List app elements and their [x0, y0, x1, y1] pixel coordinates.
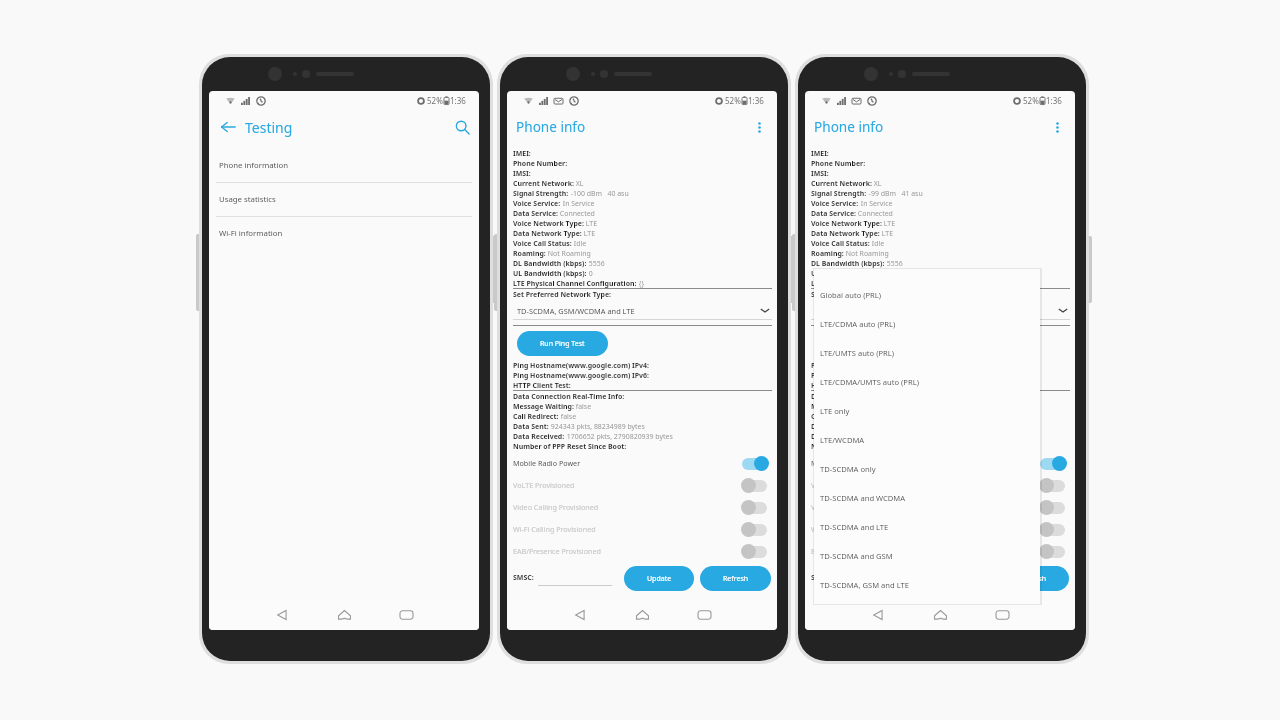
button[interactable]: Recents	[691, 602, 717, 628]
staticText: SMSC:	[513, 573, 534, 583]
button[interactable]: Back	[865, 602, 891, 628]
staticText: HTTP Client Test:	[811, 381, 869, 390]
button[interactable]: VoLTE Provisioned	[513, 474, 772, 496]
staticText: Signal Strength:	[811, 189, 867, 198]
staticText: 5556	[885, 259, 903, 268]
button[interactable]: Mobile Radio Power	[811, 452, 1070, 474]
staticText: Mobile Radio Power	[513, 458, 581, 468]
button[interactable]: Wi-Fi information	[209, 217, 479, 250]
button[interactable]: TD-SCDMA and WCDMA	[820, 483, 1040, 512]
staticText: TD-SCDMA and GSM	[820, 551, 893, 561]
button[interactable]: Global auto (PRL)	[820, 280, 1040, 309]
staticText: In Service	[859, 199, 893, 208]
button[interactable]: Search	[450, 115, 474, 139]
button[interactable]: TD-SCDMA, GSM/WCDMA and LTE	[513, 303, 772, 318]
button[interactable]: TD-SCDMA and LTE	[820, 512, 1040, 541]
staticText: VoLTE Provisioned	[811, 480, 873, 490]
staticText: Phone info	[516, 117, 586, 136]
staticText: Global auto (PRL)	[820, 290, 882, 300]
button[interactable]: Back	[269, 602, 295, 628]
button[interactable]: TD-SCDMA, GSM and LTE	[820, 570, 1040, 599]
staticText: Refresh	[1021, 574, 1047, 584]
button[interactable]: Back	[567, 602, 593, 628]
staticText: VoLTE Provisioned	[513, 480, 575, 490]
button[interactable]: Video Calling Provisioned	[513, 496, 772, 518]
staticText: Data Sent:	[811, 422, 847, 431]
button[interactable]: LTE/UMTS auto (PRL)	[820, 338, 1040, 367]
staticText: TD-SCDMA, GSM and LTE	[820, 580, 909, 590]
staticText: Data Connection Real-Time Info:	[513, 392, 625, 401]
button[interactable]: TD-SCDMA and GSM	[820, 541, 1040, 570]
staticText: Not Roaming	[546, 249, 591, 258]
staticText: LTE/CDMA/UMTS auto (PRL)	[820, 377, 919, 387]
staticText: LTE/UMTS auto (PRL)	[820, 348, 895, 358]
button[interactable]: Wi-Fi Calling Provisioned	[811, 518, 1070, 540]
button[interactable]: Home	[331, 602, 357, 628]
staticText: Phone Number:	[811, 159, 866, 168]
staticText: In Service	[561, 199, 595, 208]
staticText: Roaming:	[811, 249, 844, 258]
button[interactable]: Usage statistics	[209, 183, 479, 217]
staticText: LTE Physical Channel Configuration:	[513, 279, 637, 288]
staticText: LTE Physical Channel Configuration:	[811, 279, 935, 288]
button[interactable]: Video Calling Provisioned	[811, 496, 1070, 518]
staticText: Number of PPP Reset Since Boot:	[513, 442, 627, 451]
staticText: false	[559, 412, 577, 421]
staticText: Mobile Radio Power	[811, 458, 879, 468]
button[interactable]: Recents	[393, 602, 419, 628]
button[interactable]: Phone information	[209, 149, 479, 183]
staticText: IMSI:	[811, 169, 829, 178]
button[interactable]: Refresh	[998, 566, 1069, 591]
staticText: 924343 pkts, 88234989 bytes	[549, 422, 645, 431]
staticText: EAB/Presence Provisioned	[811, 546, 899, 556]
staticText: false	[574, 402, 592, 411]
staticText: LTE/CDMA auto (PRL)	[820, 319, 896, 329]
staticText: Set Preferred Network Type:	[513, 290, 611, 299]
button[interactable]: VoLTE Provisioned	[811, 474, 1070, 496]
staticText: Phone information	[219, 160, 288, 171]
button[interactable]: Run Ping Test	[517, 331, 608, 356]
button[interactable]: More options	[1048, 118, 1066, 136]
button[interactable]: Wi-Fi Calling Provisioned	[513, 518, 772, 540]
button[interactable]: Update	[624, 566, 694, 591]
button[interactable]: LTE/WCDMA	[820, 425, 1040, 454]
staticText: Video Calling Provisioned	[811, 502, 897, 512]
button[interactable]: Back	[216, 115, 240, 139]
button[interactable]: EAB/Presence Provisioned	[513, 540, 772, 562]
staticText: DL Bandwidth (kbps):	[513, 259, 587, 268]
staticText: Wi-Fi information	[219, 228, 283, 239]
button[interactable]: LTE/CDMA/UMTS auto (PRL)	[820, 367, 1040, 396]
staticText: Ping Hostname(www.google.com) IPv6:	[811, 371, 947, 380]
button[interactable]: Run Ping Test	[815, 331, 906, 356]
button[interactable]: Home	[629, 602, 655, 628]
staticText: Ping Hostname(www.google.com) IPv4:	[513, 361, 649, 370]
staticText: Connected	[856, 209, 893, 218]
staticText: Idle	[572, 239, 587, 248]
button[interactable]: LTE/CDMA auto (PRL)	[820, 309, 1040, 338]
button[interactable]: Home	[927, 602, 953, 628]
staticText: Message Waiting:	[513, 402, 574, 411]
staticText: Signal Strength:	[513, 189, 569, 198]
button[interactable]: Recents	[989, 602, 1015, 628]
staticText: -100 dBm 40 asu	[569, 189, 629, 198]
staticText: IMEI:	[513, 149, 531, 158]
button[interactable]: Mobile Radio Power	[513, 452, 772, 474]
staticText: 52%	[725, 95, 741, 106]
staticText: Data Connection Real-Time Info:	[811, 392, 923, 401]
staticText: Ping Hostname(www.google.com) IPv4:	[811, 361, 947, 370]
staticText: 5556	[587, 259, 605, 268]
staticText: Not Roaming	[844, 249, 889, 258]
button[interactable]: TD-SCDMA only	[820, 454, 1040, 483]
button[interactable]: LTE only	[820, 396, 1040, 425]
button[interactable]: More options	[750, 118, 768, 136]
button[interactable]: TD-SCDMA, GSM/WCDMA and LTE	[811, 303, 1070, 318]
staticText: Number of PPP Reset Since Boot:	[811, 442, 925, 451]
button[interactable]: EAB/Presence Provisioned	[811, 540, 1070, 562]
staticText: Idle	[870, 239, 885, 248]
button[interactable]: Refresh	[700, 566, 771, 591]
